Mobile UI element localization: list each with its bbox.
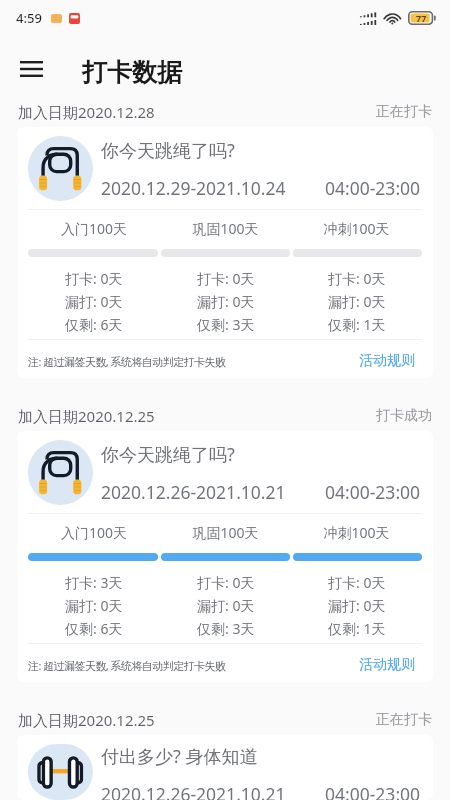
staticText: 04:00-23:00 xyxy=(325,176,421,200)
staticText: 仅剩: 6天 xyxy=(65,315,123,334)
staticText: 漏打: 0天 xyxy=(65,292,123,311)
staticText: 加入日期2020.12.25 xyxy=(18,710,155,730)
staticText: 04:00-23:00 xyxy=(325,480,421,504)
staticText: 仅剩: 1天 xyxy=(328,619,386,638)
button[interactable]: 你今天跳绳了吗? xyxy=(17,127,433,378)
staticText: 仅剩: 3天 xyxy=(197,315,255,334)
staticText: 注: 超过漏签天数, 系统将自动判定打卡失败 xyxy=(28,658,226,673)
staticText: 入门100天 xyxy=(28,523,160,542)
staticText: 漏打: 0天 xyxy=(328,292,386,311)
staticText: 2020.12.26-2021.10.21 xyxy=(101,480,286,504)
staticText: 巩固100天 xyxy=(160,523,291,542)
staticText: 巩固100天 xyxy=(160,219,291,238)
staticText: 付出多少? 身体知道 xyxy=(101,744,258,769)
button[interactable]: 活动规则 xyxy=(351,350,422,372)
staticText: 冲刺100天 xyxy=(291,219,422,238)
staticText: 活动规则 xyxy=(359,656,415,674)
staticText: 打卡数据 xyxy=(82,57,182,88)
staticText: 正在打卡 xyxy=(376,711,432,729)
staticText: 加入日期2020.12.28 xyxy=(18,102,155,122)
staticText: 漏打: 0天 xyxy=(197,292,255,311)
button[interactable]: 付出多少? 身体知道 xyxy=(17,735,433,800)
staticText: 漏打: 0天 xyxy=(65,596,123,615)
staticText: 77 xyxy=(416,12,427,24)
button[interactable]: 活动规则 xyxy=(351,654,422,676)
staticText: 你今天跳绳了吗? xyxy=(101,442,235,467)
staticText: 打卡: 0天 xyxy=(65,269,123,288)
staticText: 打卡: 0天 xyxy=(328,269,386,288)
staticText: 仅剩: 3天 xyxy=(197,619,255,638)
staticText: 仅剩: 1天 xyxy=(328,315,386,334)
staticText: 活动规则 xyxy=(359,352,415,370)
staticText: 正在打卡 xyxy=(376,103,432,121)
staticText: 04:00-23:00 xyxy=(325,782,421,800)
staticText: 漏打: 0天 xyxy=(197,596,255,615)
staticText: 冲刺100天 xyxy=(291,523,422,542)
staticText: 打卡: 0天 xyxy=(328,573,386,592)
staticText: 漏打: 0天 xyxy=(328,596,386,615)
staticText: 打卡成功 xyxy=(376,407,432,425)
staticText: 2020.12.29-2021.10.24 xyxy=(101,176,286,200)
button[interactable]: Menu xyxy=(8,46,54,92)
staticText: 加入日期2020.12.25 xyxy=(18,406,155,426)
staticText: 2020.12.26-2021.10.21 xyxy=(101,782,286,800)
staticText: 入门100天 xyxy=(28,219,160,238)
button[interactable]: 你今天跳绳了吗? xyxy=(17,431,433,682)
staticText: 4:59 xyxy=(16,9,42,27)
staticText: 仅剩: 6天 xyxy=(65,619,123,638)
staticText: 打卡: 3天 xyxy=(65,573,123,592)
staticText: 你今天跳绳了吗? xyxy=(101,138,235,163)
staticText: 打卡: 0天 xyxy=(197,269,255,288)
staticText: 打卡: 0天 xyxy=(197,573,255,592)
staticText: 注: 超过漏签天数, 系统将自动判定打卡失败 xyxy=(28,354,226,369)
